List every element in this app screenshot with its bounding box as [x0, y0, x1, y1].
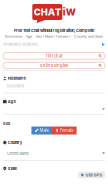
button[interactable]: Use GPS [78, 172, 105, 178]
staticText: flirt chat [46, 53, 62, 58]
staticText: Female [60, 128, 73, 133]
staticText: United States [7, 151, 29, 155]
staticText: Sex [3, 121, 10, 126]
staticText: Age [8, 99, 16, 104]
staticText: Nickname [7, 84, 24, 88]
staticText: online singles [40, 63, 68, 68]
staticText: iW [63, 6, 76, 18]
staticText: Male [40, 128, 49, 133]
staticText: CHAT [34, 6, 61, 18]
staticText: Free Text Chat without registration, Com… [14, 28, 94, 33]
staticText: Use GPS [85, 172, 102, 177]
staticText: State [8, 166, 17, 171]
button[interactable]: online singles [3, 62, 105, 69]
staticText: Nickname - Age - Sex ( Male / Female ) -… [5, 34, 103, 38]
staticText: Nickname [8, 76, 26, 81]
button[interactable]: Male [31, 126, 52, 134]
staticText: SPONSORED SEARCHES [3, 43, 38, 46]
staticText: Country [8, 140, 22, 145]
button[interactable]: flirt chat [3, 52, 105, 59]
button[interactable]: Female [52, 126, 77, 134]
